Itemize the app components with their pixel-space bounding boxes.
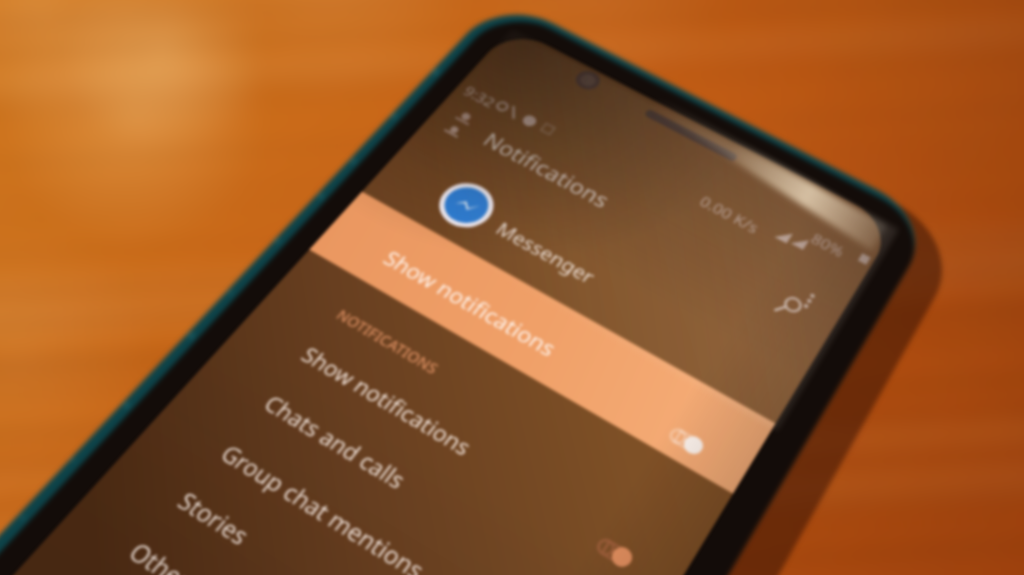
button[interactable] <box>110 518 490 568</box>
button[interactable]: Back <box>438 108 498 148</box>
button[interactable] <box>180 424 560 474</box>
button[interactable] <box>215 378 595 426</box>
button[interactable] <box>320 195 750 265</box>
button[interactable]: Search <box>770 285 820 329</box>
button[interactable] <box>250 330 630 380</box>
button[interactable]: More options <box>820 270 860 306</box>
button[interactable] <box>300 200 760 350</box>
button[interactable] <box>145 472 525 520</box>
